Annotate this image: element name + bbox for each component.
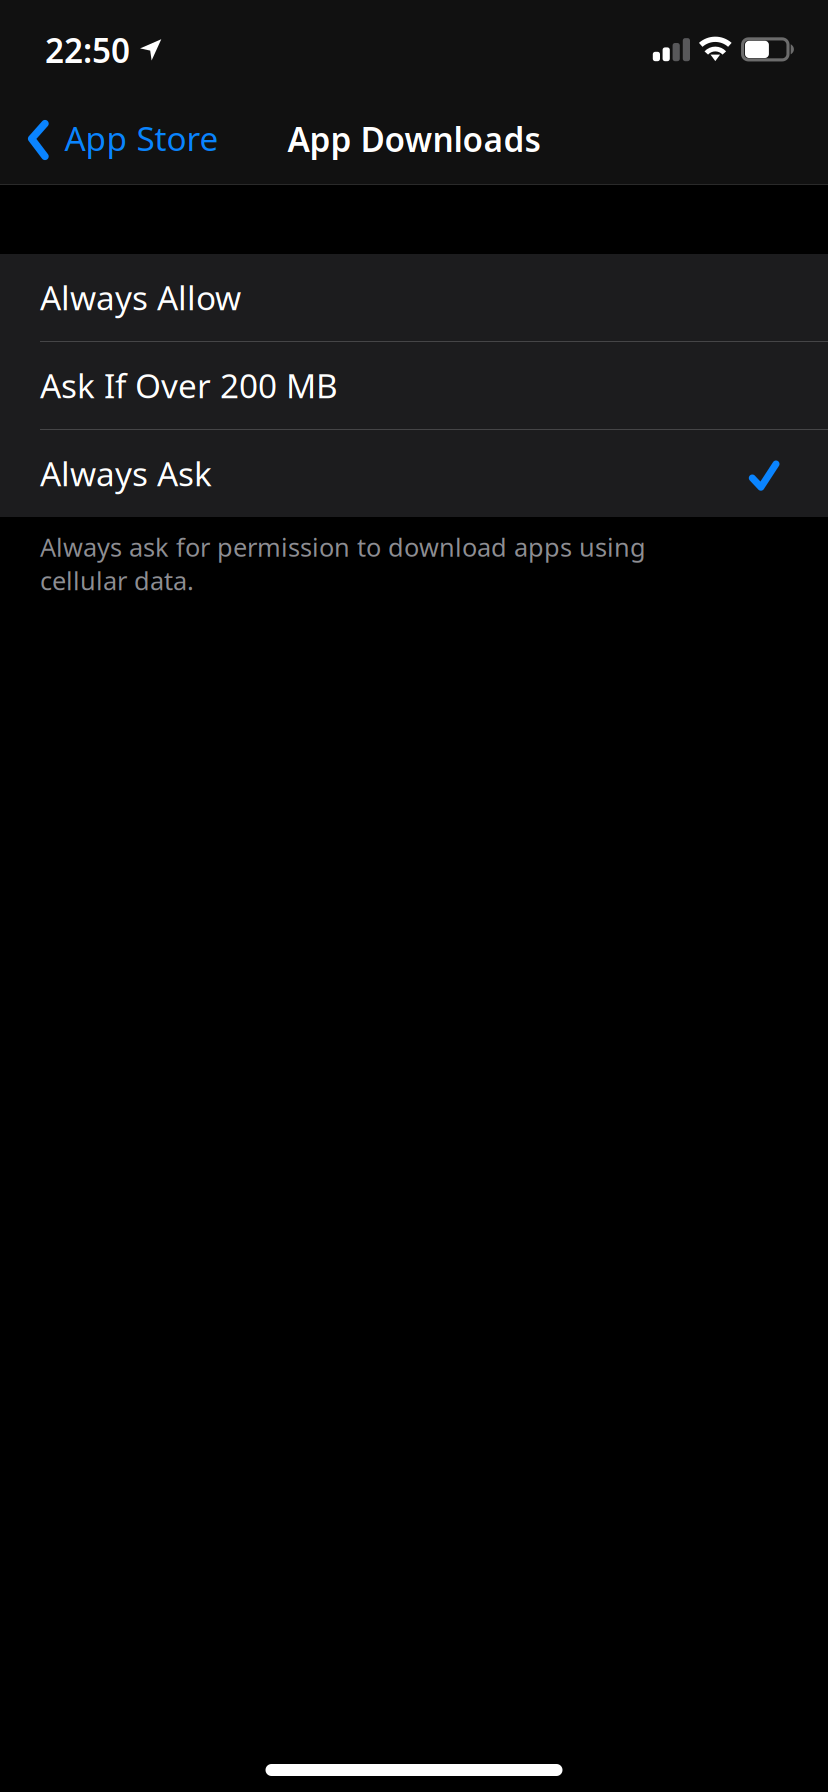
staticText: Ask If Over 200 MB	[40, 363, 338, 407]
button[interactable]: Back to App Store	[0, 94, 228, 184]
staticText: App Store	[64, 116, 218, 160]
button[interactable]: Always Allow	[0, 254, 828, 341]
button[interactable]: Always Ask	[0, 430, 828, 517]
staticText: Always Ask	[40, 451, 212, 495]
staticText: App Downloads	[287, 117, 540, 161]
staticText: Always Allow	[40, 275, 241, 319]
button[interactable]: Ask If Over 200 MB	[0, 342, 828, 429]
staticText: 22:50	[45, 28, 130, 72]
staticText: Always ask for permission to download ap…	[40, 530, 646, 597]
